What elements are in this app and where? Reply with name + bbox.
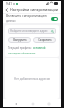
button[interactable]: Back [3, 6, 10, 13]
staticText: Включить синхронизацию [6, 14, 47, 18]
staticText: Текущий профиль: [8, 46, 32, 50]
button[interactable]: Найдите или введите адрес [8, 28, 56, 34]
button[interactable]: основной [33, 46, 46, 50]
staticText: Выгрузить [13, 38, 27, 42]
staticText: Найдите или введите адрес [10, 29, 51, 33]
button[interactable]: Recents [45, 100, 52, 107]
button[interactable]: Home [29, 100, 36, 107]
button[interactable]: Последнее обновление [8, 51, 36, 54]
button[interactable]: Включить синхронизацию [3, 14, 61, 23]
staticText: Настройки синхронизации [10, 7, 58, 12]
staticText: Нет добавленных адресов [14, 77, 50, 81]
staticText: данных [6, 19, 16, 23]
button[interactable]: Сохранить [33, 37, 56, 43]
staticText: 9:41 [6, 2, 12, 6]
other: Search [51, 30, 54, 33]
staticText: Сохранить [38, 38, 52, 42]
button[interactable]: Toggle sync [51, 17, 58, 21]
button[interactable]: Back [12, 100, 19, 107]
button[interactable]: Выгрузить [8, 37, 31, 43]
